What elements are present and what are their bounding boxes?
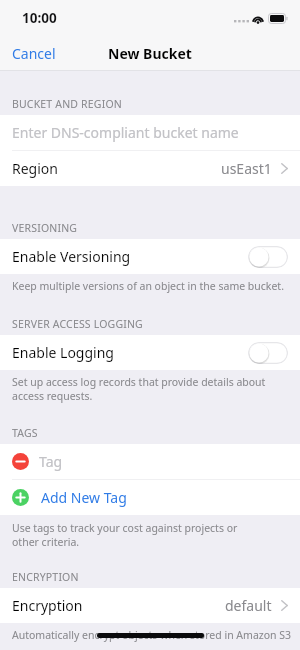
staticText: Use tags to track your cost against proj… (12, 521, 264, 549)
staticText: Add New Tag (41, 488, 127, 507)
button[interactable]: Enable Logging (0, 335, 300, 370)
staticText: Cancel (12, 44, 56, 63)
staticText: Enter DNS-compliant bucket name (12, 123, 239, 142)
button[interactable]: Remove tag (0, 444, 300, 479)
staticText: SERVER ACCESS LOGGING (12, 317, 143, 331)
button[interactable]: Enable Versioning (0, 239, 300, 274)
staticText: New Bucket (108, 44, 192, 63)
staticText: 10:00 (22, 9, 57, 27)
staticText: Set up access log records that provide d… (12, 375, 288, 403)
button[interactable]: Toggle (248, 342, 288, 364)
staticText: Tag (39, 452, 63, 471)
staticText: TAGS (12, 426, 38, 440)
staticText: ENCRYPTION (12, 570, 79, 584)
staticText: Keep multiple versions of an object in t… (12, 279, 284, 293)
staticText: Enable Logging (12, 343, 114, 362)
button[interactable]: Region (0, 151, 300, 186)
staticText: Automatically encrypt objects when store… (12, 628, 292, 642)
staticText: Enable Versioning (12, 247, 131, 266)
staticText: Region (12, 159, 58, 178)
other: Remove tag (12, 453, 29, 470)
staticText: usEast1 (221, 159, 272, 178)
staticText: default (225, 596, 272, 615)
staticText: BUCKET AND REGION (12, 97, 122, 111)
button[interactable]: Toggle (248, 246, 288, 268)
button[interactable]: Enter DNS-compliant bucket name (0, 115, 300, 150)
other: Add new tag (12, 489, 29, 506)
staticText: VERSIONING (12, 221, 78, 235)
staticText: Encryption (12, 596, 83, 615)
button[interactable]: Cancel (0, 37, 68, 70)
button[interactable]: Add new tag (0, 480, 300, 515)
button[interactable]: Encryption (0, 588, 300, 623)
